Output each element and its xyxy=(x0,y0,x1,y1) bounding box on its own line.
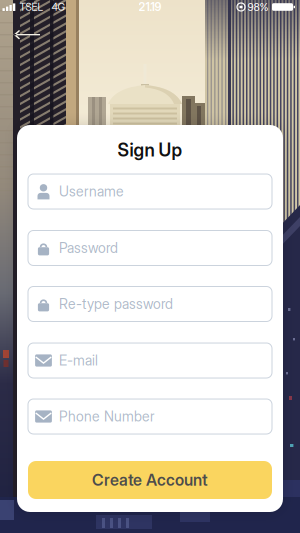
staticText: Re-type password xyxy=(59,295,173,312)
staticText: E-mail xyxy=(59,352,98,369)
button[interactable]: Re-type password xyxy=(28,286,272,321)
staticText: 98% xyxy=(247,0,268,13)
staticText: Phone Number xyxy=(59,408,155,425)
button[interactable]: Password xyxy=(28,230,272,265)
button[interactable]: Phone Number xyxy=(28,399,272,434)
staticText: TSEL xyxy=(19,1,43,13)
button[interactable]: E-mail xyxy=(28,343,272,378)
staticText: 4G xyxy=(51,1,65,13)
staticText: Username xyxy=(59,183,124,200)
button[interactable]: Create Account xyxy=(28,461,272,499)
button[interactable]: Username xyxy=(28,174,272,209)
staticText: Password xyxy=(59,239,118,256)
staticText: 21.19 xyxy=(138,0,161,14)
staticText: Sign Up xyxy=(117,139,182,161)
staticText: Create Account xyxy=(92,470,208,490)
